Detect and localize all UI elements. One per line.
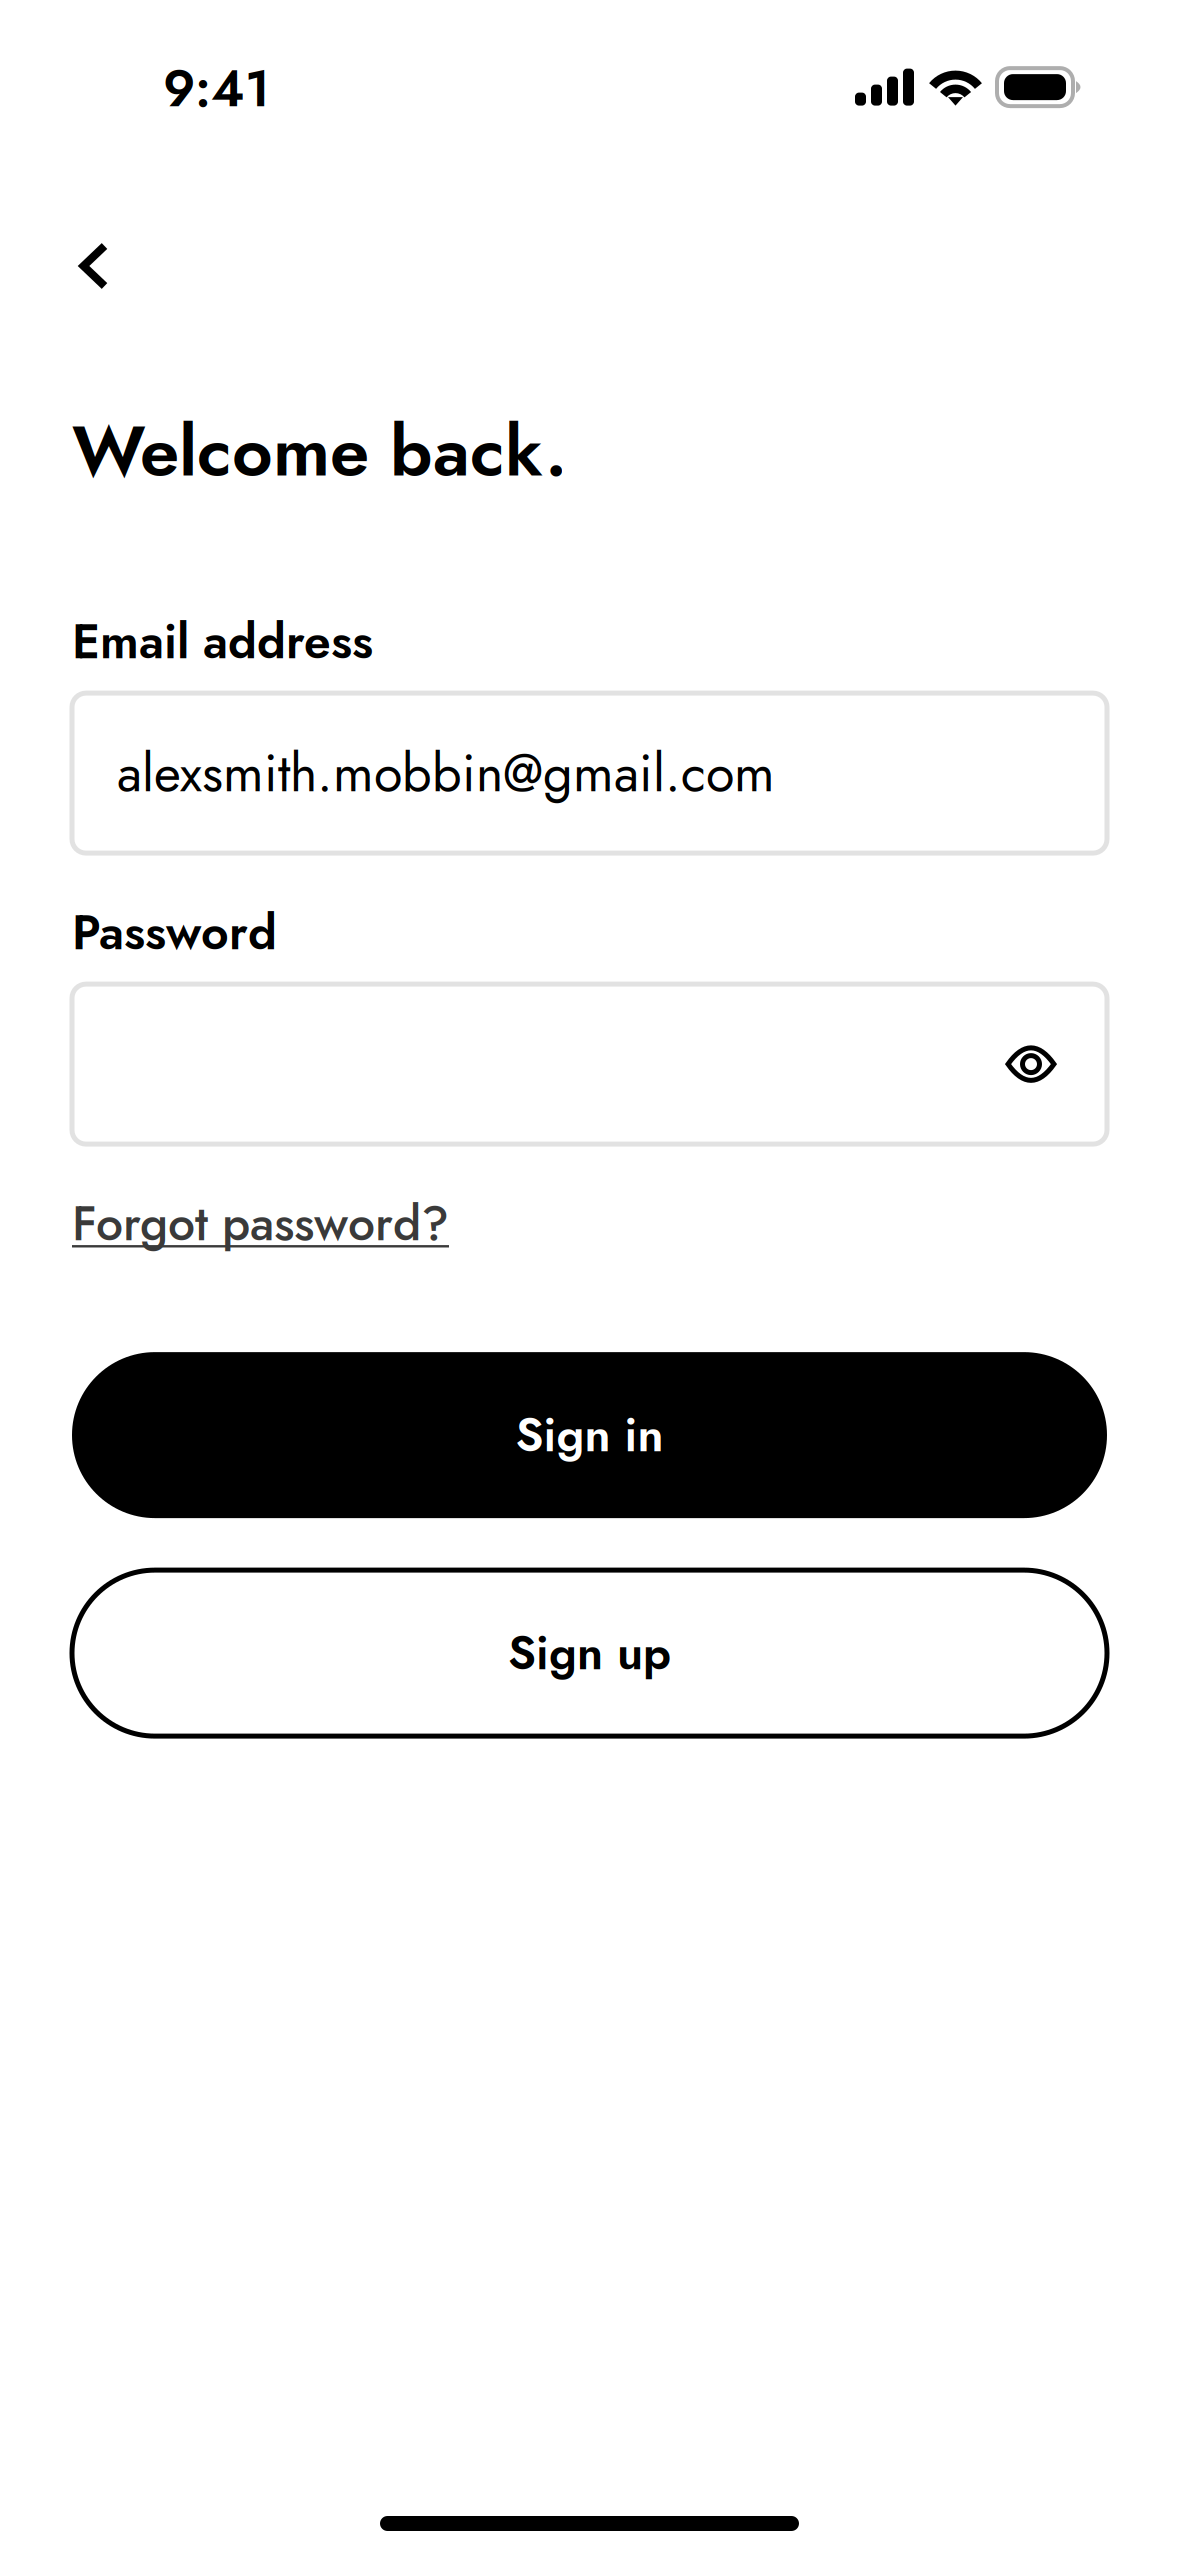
staticText: Welcome back. — [72, 400, 567, 502]
button[interactable]: Sign up — [72, 1570, 1107, 1736]
staticText: Sign in — [515, 1401, 663, 1469]
button[interactable]: Back — [42, 152, 146, 318]
staticText: 9:41 — [163, 52, 270, 125]
button[interactable]: Forgot password? — [72, 1189, 449, 1258]
staticText: Forgot password? — [72, 1189, 449, 1258]
staticText: alexsmith.mobbin@gmail.com — [117, 735, 775, 811]
staticText: Sign up — [508, 1619, 671, 1687]
button[interactable]: Sign in — [72, 1352, 1107, 1518]
staticText: Password — [72, 898, 277, 967]
button[interactable]: Show password — [993, 1026, 1069, 1102]
staticText: Email address — [72, 607, 373, 676]
